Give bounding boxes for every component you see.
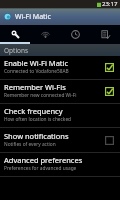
button[interactable]: Log: [90, 25, 120, 44]
staticText: Options: [4, 46, 29, 55]
button[interactable]: Enable Wi-Fi Matic: [0, 56, 120, 80]
staticText: Preferences for advanced usage: [4, 165, 77, 172]
staticText: Advanced preferences: [4, 155, 83, 165]
staticText: How often location is checked: [4, 116, 72, 123]
button[interactable]: Wi-Fi: [30, 25, 60, 44]
staticText: Show notifications: [4, 131, 69, 141]
button[interactable]: Settings: [0, 25, 30, 44]
staticText: Check frequency: [4, 106, 63, 116]
staticText: Remember new connected Wi-Fi: [4, 92, 77, 99]
staticText: Connected to Vodafone58AB: [4, 68, 69, 75]
button[interactable]: Schedule: [60, 25, 90, 44]
button[interactable]: Advanced preferences: [0, 153, 120, 177]
button[interactable]: Remember Wi-Fis: [0, 80, 120, 104]
staticText: Remember Wi-Fis: [4, 82, 66, 92]
staticText: Enable Wi-Fi Matic: [4, 58, 69, 68]
staticText: 23:17: [102, 0, 118, 8]
button[interactable]: Check frequency: [0, 104, 120, 128]
button[interactable]: Show notifications: [0, 128, 120, 153]
staticText: Notifies of every action: [4, 141, 56, 148]
staticText: Wi-Fi Matic: [15, 12, 51, 22]
